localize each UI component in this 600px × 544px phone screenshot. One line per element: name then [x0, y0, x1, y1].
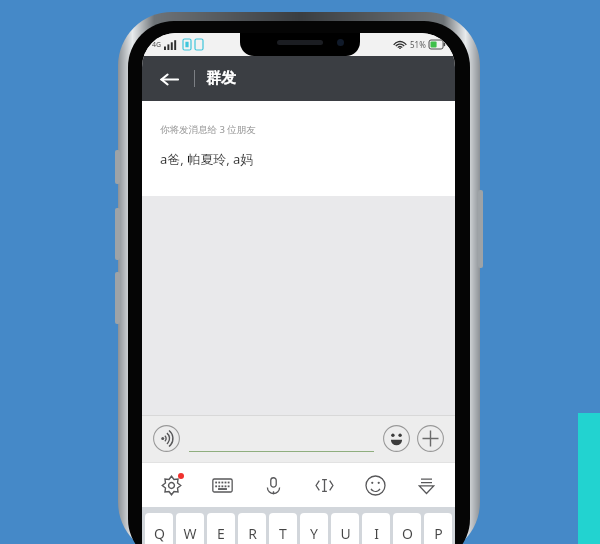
button[interactable]: T — [269, 513, 297, 544]
button[interactable]: Q — [145, 513, 173, 544]
staticText: R — [248, 524, 257, 543]
staticText: 51% — [410, 39, 426, 50]
button[interactable]: I — [362, 513, 390, 544]
staticText: a爸, 帕夏玲, a妈 — [160, 150, 254, 168]
button[interactable]: Hide keyboard — [409, 468, 443, 502]
button[interactable]: Back — [150, 60, 188, 98]
staticText: P — [434, 524, 443, 543]
staticText: 群发 — [206, 69, 236, 88]
staticText: T — [279, 524, 287, 543]
staticText: 4G — [152, 40, 162, 50]
button[interactable]: Voice input — [153, 425, 180, 452]
staticText: I — [374, 524, 379, 543]
button[interactable]: Settings — [154, 468, 188, 502]
button[interactable]: Emoji — [383, 425, 410, 452]
staticText: W — [183, 524, 197, 543]
staticText: O — [402, 524, 413, 543]
button[interactable]: Handwriting — [307, 468, 341, 502]
button[interactable]: Keyboard — [205, 468, 239, 502]
button[interactable]: Voice — [256, 468, 290, 502]
staticText: U — [340, 524, 351, 543]
button[interactable]: P — [424, 513, 452, 544]
button[interactable]: Y — [300, 513, 328, 544]
button[interactable]: W — [176, 513, 204, 544]
button[interactable]: Emoticons — [358, 468, 392, 502]
staticText: 你将发消息给 3 位朋友 — [160, 123, 256, 136]
button[interactable]: U — [331, 513, 359, 544]
button[interactable]: R — [238, 513, 266, 544]
button[interactable]: More — [417, 425, 444, 452]
button[interactable]: E — [207, 513, 235, 544]
button[interactable]: O — [393, 513, 421, 544]
staticText: E — [217, 524, 225, 543]
staticText: Y — [310, 524, 318, 543]
staticText: Q — [154, 524, 165, 543]
button[interactable] — [189, 415, 374, 462]
